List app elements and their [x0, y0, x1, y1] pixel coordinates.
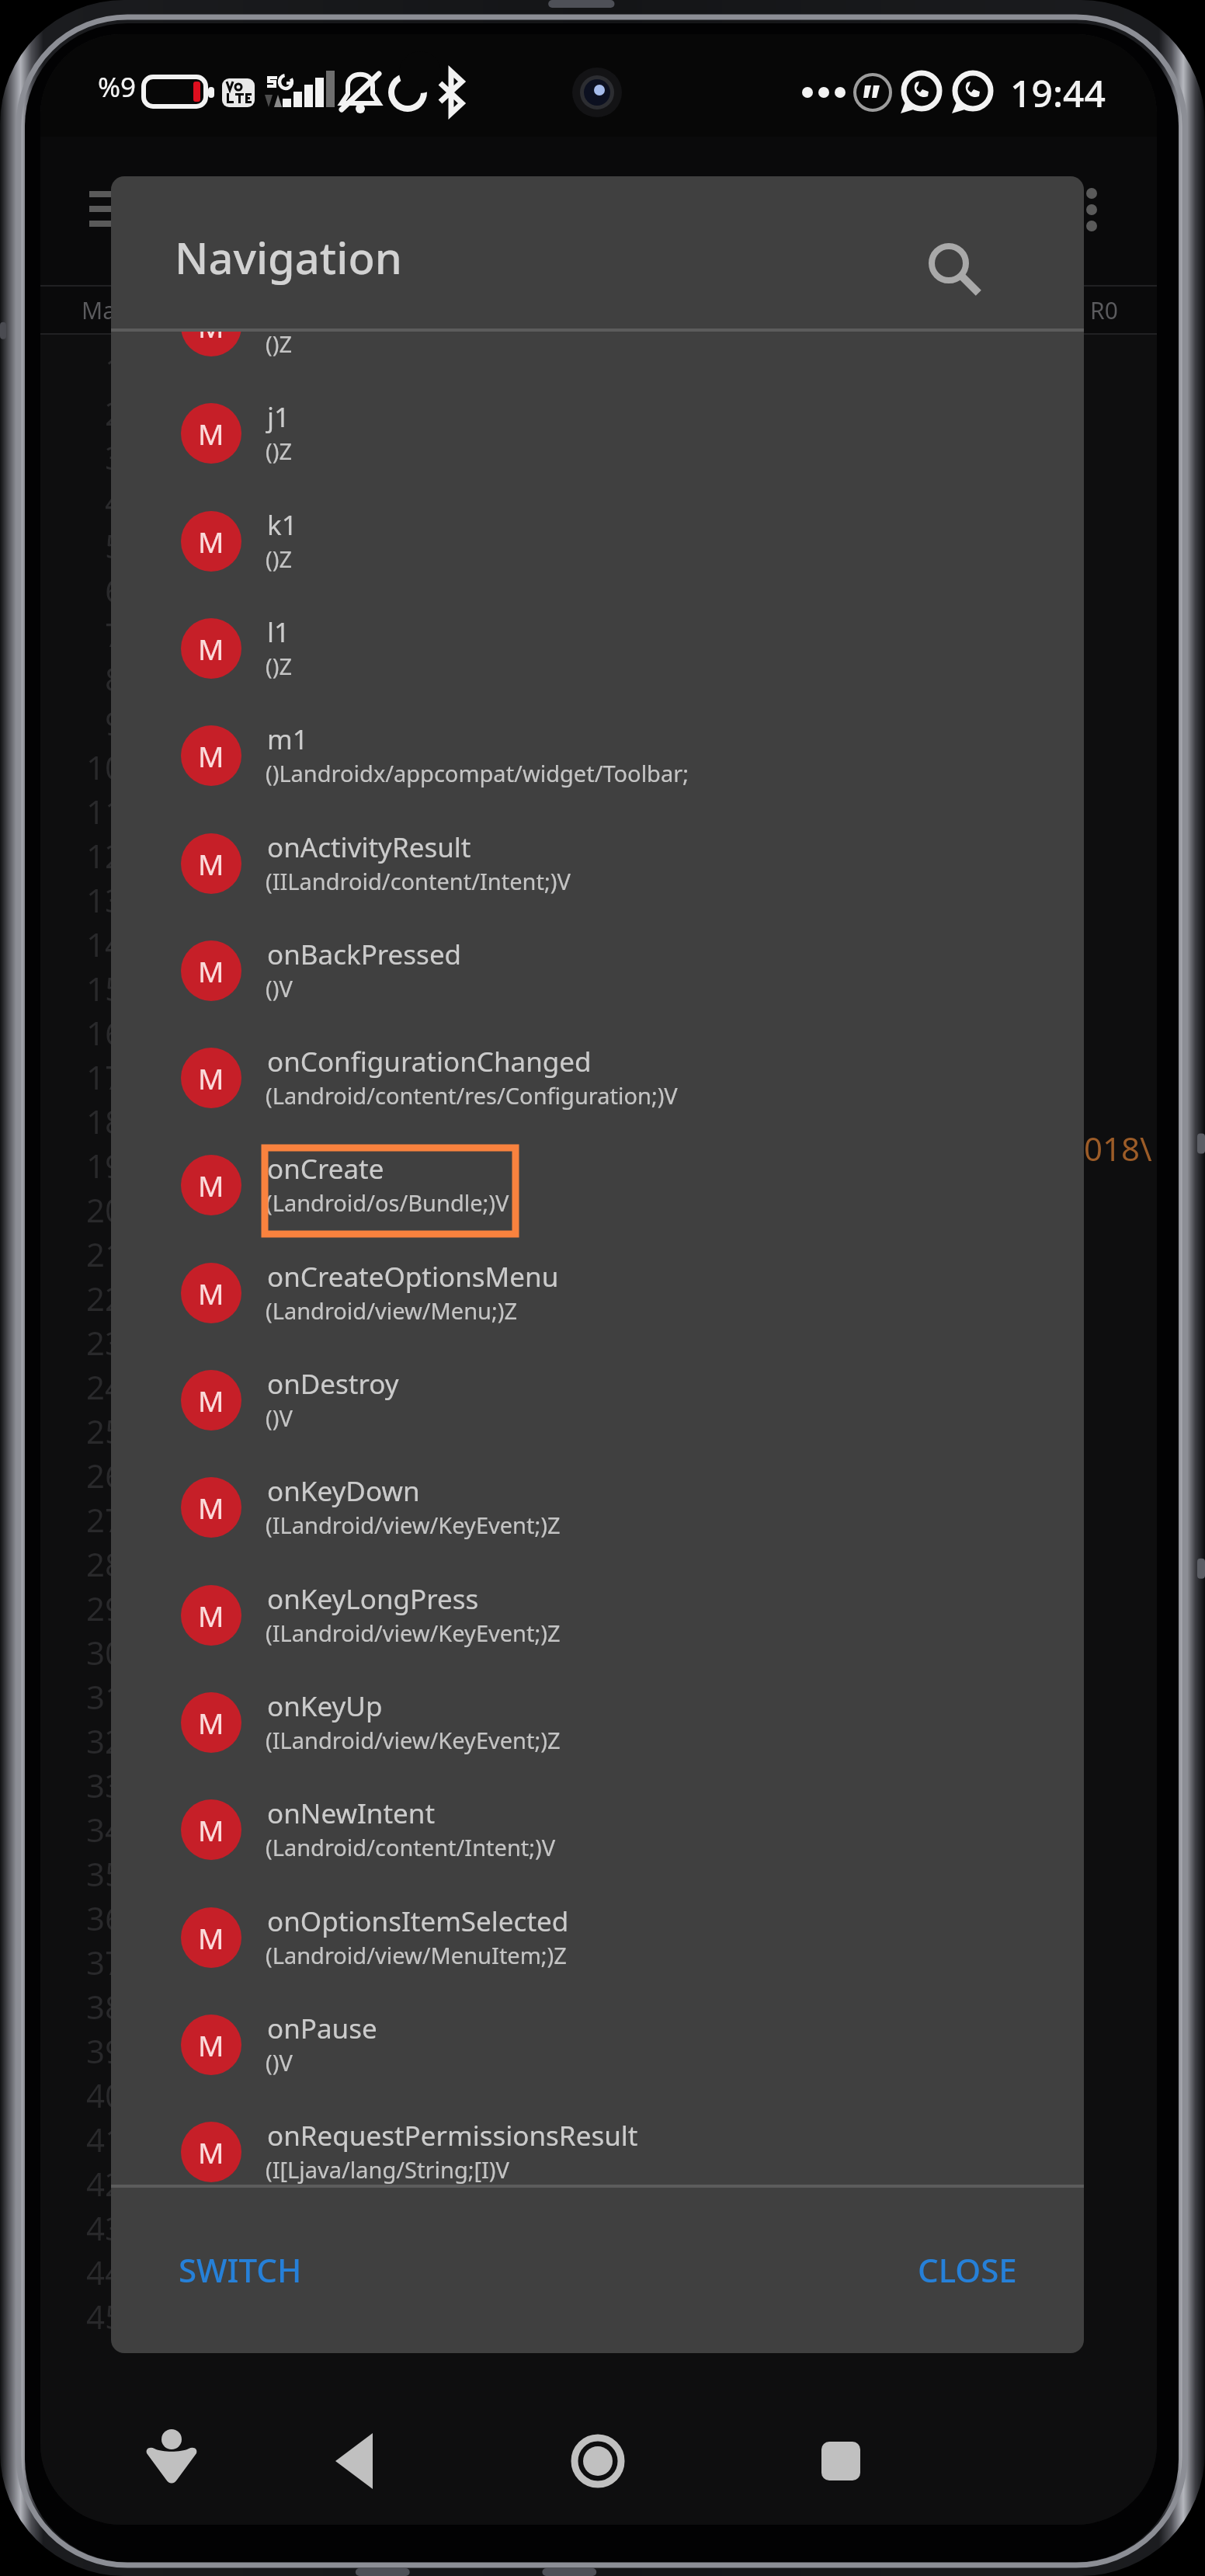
button[interactable]: M — [111, 488, 1084, 595]
staticText: onPause — [267, 2010, 377, 2047]
staticText: SWITCH — [179, 2247, 302, 2292]
staticText: 14 — [86, 922, 124, 966]
staticText: 24 — [86, 1364, 124, 1409]
button[interactable]: Downloads — [125, 2414, 218, 2508]
button[interactable]: Home — [551, 2414, 644, 2508]
button[interactable]: CLOSE — [899, 2234, 1036, 2306]
button[interactable]: Search — [921, 227, 986, 292]
staticText: ()V — [266, 1403, 293, 1433]
staticText: 2 — [105, 391, 124, 435]
staticText: ()Z — [266, 651, 292, 681]
button[interactable]: M — [111, 1669, 1084, 1776]
staticText: 28 — [86, 1542, 124, 1586]
staticText: M — [198, 2025, 224, 2064]
staticText: onCreate — [267, 1150, 384, 1187]
button[interactable]: M — [111, 332, 1084, 380]
staticText: ()V — [266, 2047, 293, 2077]
button[interactable]: M — [111, 1562, 1084, 1669]
staticText: 12 — [86, 833, 124, 878]
staticText: (Landroid/view/MenuItem;)Z — [266, 1940, 567, 1970]
button[interactable]: M — [111, 810, 1084, 917]
staticText: (ILandroid/view/KeyEvent;)Z — [266, 1725, 561, 1755]
staticText: 40 — [86, 2073, 124, 2117]
staticText: M — [198, 844, 224, 883]
staticText: 018\ — [1084, 1126, 1152, 1170]
staticText: (I[Ljava/lang/String;[I)V — [266, 2154, 509, 2185]
staticText: (Landroid/os/Bundle;)V — [266, 1187, 509, 1218]
staticText: 19 — [86, 1143, 124, 1187]
button[interactable]: M — [111, 2098, 1084, 2185]
staticText: 26 — [86, 1453, 124, 1497]
staticText: 30 — [86, 1630, 124, 1674]
staticText: 23 — [86, 1320, 124, 1364]
staticText: M — [198, 1596, 224, 1635]
button[interactable]: Back — [309, 2414, 402, 2508]
staticText: j1 — [267, 398, 290, 436]
staticText: 43 — [86, 2206, 124, 2250]
button[interactable]: M — [111, 1024, 1084, 1132]
button[interactable]: SWITCH — [160, 2234, 321, 2306]
staticText: 29 — [86, 1586, 124, 1630]
button[interactable]: M — [111, 1776, 1084, 1883]
button[interactable]: M — [111, 1884, 1084, 1991]
staticText: k1 — [267, 506, 297, 544]
staticText: 7 — [105, 612, 124, 656]
staticText: M — [198, 1381, 224, 1420]
staticText: Navigation — [175, 228, 402, 287]
staticText: M — [198, 1918, 224, 1957]
button[interactable]: M — [111, 1132, 1084, 1239]
staticText: 39 — [86, 2028, 124, 2073]
staticText: (IILandroid/content/Intent;)V — [266, 866, 571, 896]
staticText: 35 — [86, 1851, 124, 1896]
staticText: ()Z — [266, 332, 292, 359]
staticText: 32 — [86, 1719, 124, 1763]
button[interactable]: M — [111, 380, 1084, 487]
staticText: 15 — [86, 966, 124, 1010]
button[interactable]: M — [111, 1454, 1084, 1561]
staticText: onOptionsItemSelected — [267, 1903, 569, 1940]
staticText: M — [198, 1810, 224, 1849]
staticText: 6 — [105, 568, 124, 612]
staticText: onCreateOptionsMenu — [267, 1258, 559, 1295]
staticText: 21 — [86, 1232, 124, 1276]
staticText: 18 — [86, 1099, 124, 1143]
staticText: onKeyUp — [267, 1688, 383, 1725]
staticText: R0 — [1090, 294, 1118, 326]
staticText: 38 — [86, 1984, 124, 2028]
button[interactable]: M — [111, 917, 1084, 1024]
staticText: 8 — [105, 656, 124, 700]
staticText: l1 — [267, 614, 290, 651]
staticText: M — [198, 736, 224, 775]
staticText: 36 — [86, 1896, 124, 1940]
staticText: 25 — [86, 1409, 124, 1453]
staticText: onNewIntent — [267, 1795, 436, 1832]
staticText: M — [198, 1059, 224, 1097]
staticText: M — [198, 332, 224, 346]
staticText: ()Z — [266, 544, 292, 574]
staticText: 37 — [86, 1940, 124, 1984]
staticText: 10 — [86, 745, 124, 789]
staticText: 11 — [86, 789, 124, 833]
staticText: M — [198, 951, 224, 990]
staticText: 5 — [105, 523, 124, 568]
button[interactable]: M — [111, 702, 1084, 809]
button[interactable]: M — [111, 1991, 1084, 2098]
staticText: 45 — [86, 2294, 124, 2338]
staticText: onKeyDown — [267, 1472, 420, 1510]
staticText: 27 — [86, 1497, 124, 1542]
staticText: 34 — [86, 1807, 124, 1851]
staticText: M — [198, 629, 224, 668]
staticText: onConfigurationChanged — [267, 1043, 592, 1080]
button[interactable]: M — [111, 1239, 1084, 1347]
button[interactable]: M — [111, 595, 1084, 702]
button[interactable]: M — [111, 1347, 1084, 1454]
staticText: m1 — [267, 721, 308, 758]
button[interactable]: Recent apps — [794, 2414, 887, 2508]
staticText: 4 — [105, 479, 124, 523]
staticText: 20 — [86, 1187, 124, 1232]
staticText: onActivityResult — [267, 829, 471, 866]
staticText: 19:44 — [1010, 68, 1106, 118]
staticText: 22 — [86, 1276, 124, 1320]
staticText: M — [198, 1274, 224, 1312]
staticText: M — [198, 414, 224, 453]
